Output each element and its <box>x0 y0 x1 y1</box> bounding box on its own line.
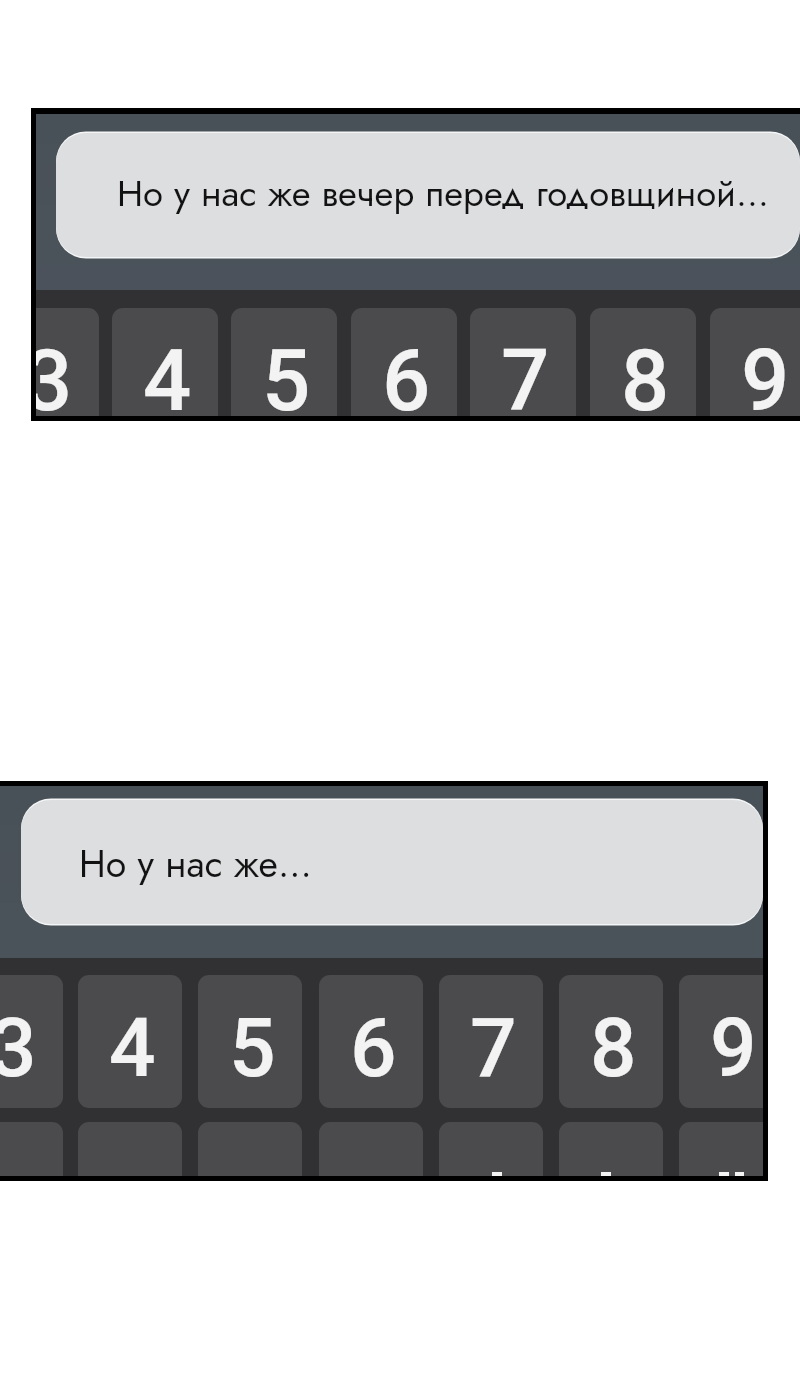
button[interactable]: 6 <box>351 308 457 416</box>
button[interactable]: 4 <box>78 975 182 1108</box>
button[interactable]: 8 <box>590 308 696 416</box>
staticText: 9 <box>710 1000 757 1096</box>
button[interactable]: 6 <box>319 975 423 1108</box>
button[interactable]: Но у нас же вечер перед годовщиной… <box>56 133 800 257</box>
button[interactable]: 9 <box>679 975 763 1108</box>
button[interactable]: Но у нас же… <box>0 781 768 1181</box>
button[interactable]: Г <box>679 1122 763 1176</box>
staticText: 6 <box>382 331 431 416</box>
staticText: 4 <box>143 331 192 416</box>
button[interactable]: 7 <box>439 975 543 1108</box>
button[interactable]: 3 <box>0 975 63 1108</box>
button[interactable]: 3 <box>36 308 99 416</box>
staticText: 5 <box>229 1000 276 1096</box>
button[interactable]: 7 <box>470 308 576 416</box>
button[interactable]: Но у нас же… <box>21 800 763 924</box>
button[interactable]: 5 <box>198 975 302 1108</box>
staticText: 7 <box>470 1000 517 1096</box>
staticText: 8 <box>590 1000 637 1096</box>
button[interactable]: 4 <box>112 308 218 416</box>
staticText: 7 <box>501 331 550 416</box>
staticText: 8 <box>621 331 670 416</box>
button[interactable]: Но у нас же вечер перед годовщиной… <box>31 108 800 421</box>
staticText: 4 <box>109 1000 156 1096</box>
staticText: Но у нас же… <box>79 837 312 891</box>
button[interactable]: Н <box>559 1122 663 1176</box>
staticText: 9 <box>741 331 790 416</box>
button[interactable]: 5 <box>231 308 337 416</box>
staticText: 6 <box>350 1000 397 1096</box>
button[interactable]: 8 <box>559 975 663 1108</box>
staticText: 5 <box>262 331 311 416</box>
staticText: Но у нас же вечер перед годовщиной… <box>117 167 769 220</box>
button[interactable]: Е <box>439 1122 543 1176</box>
button[interactable]: 9 <box>710 308 800 416</box>
staticText: 3 <box>36 331 73 416</box>
staticText: 3 <box>0 1000 37 1096</box>
